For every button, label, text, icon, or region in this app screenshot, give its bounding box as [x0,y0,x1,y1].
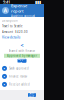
staticText: Finance review [9,75,27,78]
staticText: Sarah approved [9,67,29,70]
button[interactable]: View details [0,34,20,39]
button[interactable]: Share [19,42,25,48]
staticText: Approve [18,57,26,64]
staticText: Approved by manager [7,54,37,57]
button[interactable]: Submit [28,93,36,97]
staticText: • [3,66,5,71]
button[interactable]: Approve [17,59,26,63]
staticText: < [20,42,23,49]
staticText: Expense report [11,3,27,13]
staticText: Receipt added [9,83,30,86]
staticText: Amount $420.00 [2,30,28,34]
staticText: 9:41 [3,0,10,5]
button[interactable]: Account [2,7,9,14]
staticText: View details [2,36,20,39]
staticText: Submit [29,91,35,99]
staticText: Shared with finance [8,49,35,53]
staticText: Awaiting approval [11,14,35,18]
staticText: Travel to Seattle [2,24,23,28]
staticText: Description [2,19,18,22]
staticText: ▮▮▮ [35,0,41,4]
staticText: A [3,7,7,14]
staticText: • [3,82,5,87]
staticText: • [3,74,5,79]
